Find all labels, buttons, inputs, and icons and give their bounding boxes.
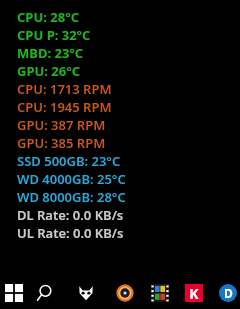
staticText: CPU: 1713 RPM [17,80,112,98]
button[interactable]: Video editor [145,277,175,309]
button[interactable]: CPU P: 32°C [17,26,91,44]
staticText: MBD: 23°C [17,44,84,62]
staticText: GPU: 387 RPM [17,116,106,134]
button[interactable]: Disk tool [110,277,140,309]
button[interactable]: Browser [213,277,240,309]
button[interactable]: Start [0,277,29,309]
button[interactable]: GPU: 385 RPM [17,134,106,152]
button[interactable]: SSD 500GB: 23°C [17,152,121,170]
button[interactable]: WD 8000GB: 28°C [17,188,126,206]
staticText: CPU: 28°C [17,8,80,26]
staticText: K [189,284,199,302]
button[interactable]: Search [29,277,59,309]
staticText: DL Rate: 0.0 KB/s [17,206,124,224]
staticText: SSD 500GB: 23°C [17,152,121,170]
staticText: D [224,285,233,301]
button[interactable]: Fox app [71,277,101,309]
staticText: CPU P: 32°C [17,26,91,44]
staticText: WD 4000GB: 25°C [17,170,126,188]
staticText: CPU: 1945 RPM [17,98,112,116]
staticText: GPU: 26°C [17,62,81,80]
button[interactable]: GPU: 26°C [17,62,81,80]
staticText: UL Rate: 0.0 KB/s [17,224,124,242]
button[interactable]: CPU: 1713 RPM [17,80,112,98]
staticText: GPU: 385 RPM [17,134,106,152]
staticText: WD 8000GB: 28°C [17,188,126,206]
button[interactable]: DL Rate: 0.0 KB/s [17,206,124,224]
button[interactable]: CPU: 28°C [17,8,80,26]
button[interactable]: WD 4000GB: 25°C [17,170,126,188]
button[interactable]: Kaspersky [179,277,209,309]
button[interactable]: MBD: 23°C [17,44,84,62]
button[interactable]: GPU: 387 RPM [17,116,106,134]
button[interactable]: CPU: 1945 RPM [17,98,112,116]
button[interactable]: UL Rate: 0.0 KB/s [17,224,124,242]
